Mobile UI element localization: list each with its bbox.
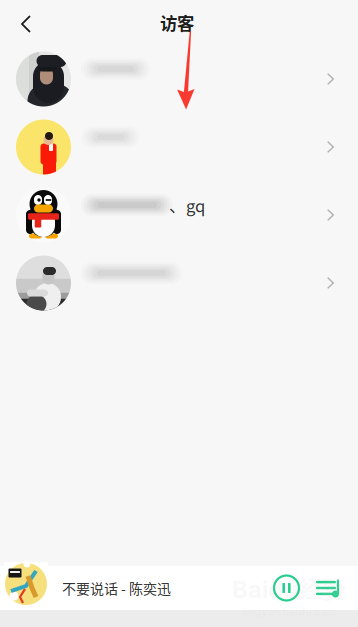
staticText: Baidu经验 (232, 575, 346, 605)
button[interactable] (0, 113, 358, 181)
staticText: 访客 (160, 10, 194, 35)
button[interactable]: Back (0, 5, 45, 39)
button[interactable]: 、gq (0, 181, 358, 249)
button[interactable] (0, 249, 358, 317)
staticText: 、gq (169, 193, 205, 217)
button[interactable] (0, 45, 358, 113)
button[interactable]: Pause (269, 574, 304, 601)
staticText: 不要说话 - 陈奕迅 (62, 578, 171, 598)
staticText: jingyan.baidu.com (242, 605, 335, 618)
button[interactable]: Playlist (304, 578, 358, 598)
